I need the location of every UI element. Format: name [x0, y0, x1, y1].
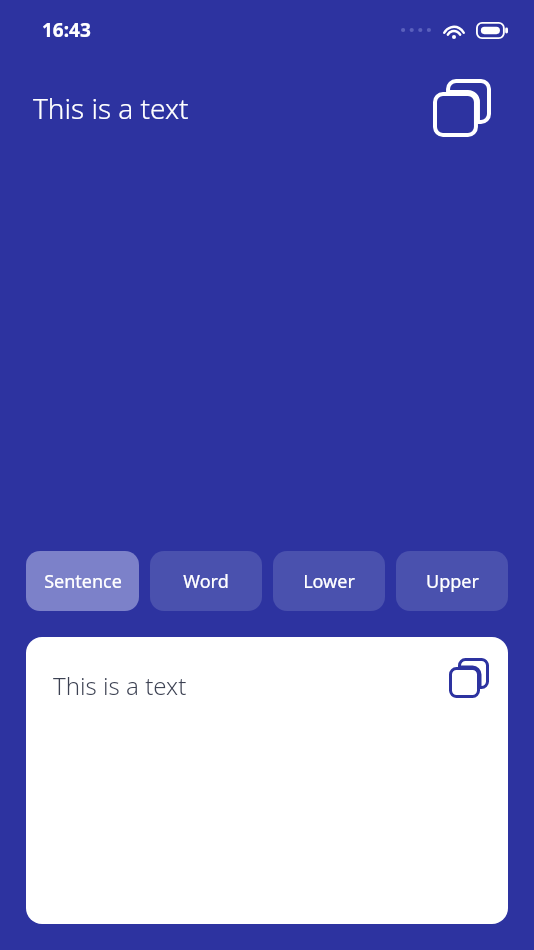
staticText: This is a text — [53, 669, 187, 702]
button[interactable]: Word — [150, 551, 262, 611]
button[interactable]: Upper — [396, 551, 508, 611]
staticText: Sentence — [44, 569, 122, 594]
staticText: This is a text — [33, 89, 189, 127]
staticText: Word — [183, 569, 229, 594]
button[interactable]: Copy result text — [449, 658, 489, 698]
staticText: Lower — [303, 569, 355, 594]
button[interactable]: Sentence — [26, 551, 139, 611]
button[interactable]: Lower — [273, 551, 385, 611]
button[interactable]: Copy text — [433, 79, 491, 137]
staticText: 16:43 — [42, 17, 91, 43]
staticText: Upper — [426, 569, 479, 594]
button[interactable]: This is a text — [26, 637, 508, 924]
